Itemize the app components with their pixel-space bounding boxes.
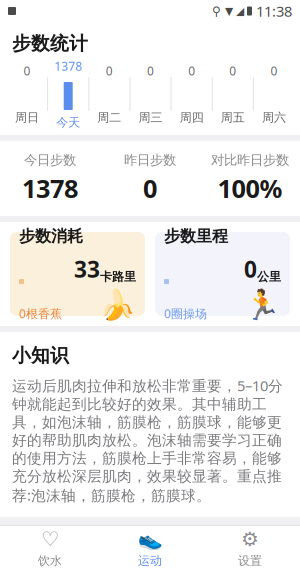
staticText: 0: [244, 254, 257, 284]
staticText: 0: [106, 63, 113, 79]
staticText: 周二: [97, 110, 121, 125]
staticText: 100%: [217, 171, 282, 205]
button[interactable]: 步数里程: [155, 232, 290, 316]
button[interactable]: ⚙: [200, 526, 300, 570]
staticText: 0: [143, 171, 157, 205]
staticText: 周六: [262, 110, 286, 125]
staticText: 设置: [238, 553, 262, 568]
staticText: 0: [147, 63, 154, 79]
staticText: ⚙: [241, 528, 259, 550]
staticText: 0: [229, 63, 236, 79]
staticText: 对比昨日步数: [211, 152, 289, 168]
staticText: 步数里程: [164, 226, 228, 246]
staticText: 运动后肌肉拉伸和放松非常重要，5–10分钟就能起到比较好的效果。其中辅助工具，如…: [12, 376, 283, 505]
staticText: ♡: [41, 528, 59, 550]
staticText: ▼: [225, 5, 233, 17]
staticText: 周四: [180, 110, 204, 125]
staticText: 1378: [22, 171, 78, 205]
staticText: 0: [188, 63, 195, 79]
staticText: 饮水: [38, 553, 62, 568]
staticText: 11:38: [256, 1, 292, 21]
staticText: 0: [24, 63, 31, 79]
staticText: 🍌: [99, 288, 136, 322]
button[interactable]: 👟: [100, 526, 200, 570]
staticText: 0根香蕉: [19, 306, 62, 321]
staticText: 0: [270, 63, 277, 79]
staticText: 33: [74, 254, 100, 284]
staticText: 公里: [257, 269, 281, 284]
staticText: 周三: [138, 110, 162, 125]
button[interactable]: 步数消耗: [10, 232, 145, 316]
staticText: 步数消耗: [19, 226, 83, 246]
staticText: ◢: [236, 5, 244, 17]
button[interactable]: ♡: [0, 526, 100, 570]
staticText: 今日步数: [24, 152, 76, 168]
staticText: 卡路里: [100, 269, 136, 284]
staticText: 1378: [54, 58, 82, 74]
staticText: 昨日步数: [124, 152, 176, 168]
staticText: 👟: [137, 528, 162, 550]
staticText: 🏃: [244, 288, 281, 322]
staticText: 0圈操场: [164, 306, 207, 321]
staticText: 周五: [221, 110, 245, 125]
staticText: 步数统计: [12, 32, 88, 55]
staticText: 运动: [138, 553, 162, 568]
staticText: 小知识: [12, 344, 69, 367]
staticText: 今天: [56, 115, 80, 130]
staticText: 周日: [15, 110, 39, 125]
staticText: ⚲: [212, 4, 221, 18]
